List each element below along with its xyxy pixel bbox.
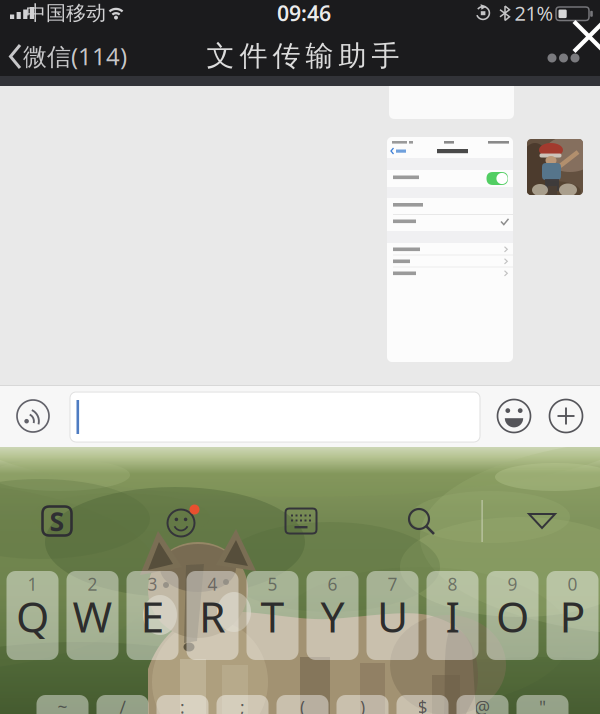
staticText: I xyxy=(445,588,459,644)
button[interactable]: Close xyxy=(570,17,600,55)
button[interactable]: 9 xyxy=(486,571,538,660)
button[interactable]: ) xyxy=(336,695,388,714)
staticText: T xyxy=(260,588,284,644)
staticText: R xyxy=(199,588,226,644)
button[interactable]: Keyboard switch xyxy=(284,504,317,537)
button[interactable]: More xyxy=(546,44,586,72)
button[interactable]: Stickers xyxy=(166,504,200,538)
staticText: 3 xyxy=(147,572,157,595)
button[interactable]: More options xyxy=(548,398,584,434)
staticText: 文件传输助手 xyxy=(206,39,399,73)
staticText: W xyxy=(72,588,112,644)
staticText: ) xyxy=(360,695,365,714)
button[interactable]: : xyxy=(156,695,208,714)
button[interactable]: 微信(114) xyxy=(4,42,136,72)
staticText: 9 xyxy=(507,572,517,595)
staticText: / xyxy=(119,695,125,714)
button[interactable]: Hide keyboard xyxy=(527,509,557,533)
staticText: : xyxy=(180,695,185,714)
staticText: E xyxy=(140,588,164,644)
staticText: " xyxy=(539,695,546,714)
button[interactable]: ( xyxy=(276,695,328,714)
staticText: 2 xyxy=(87,572,97,595)
staticText: 微信(114) xyxy=(23,40,127,72)
button[interactable]: @ xyxy=(456,695,508,714)
button[interactable]: Message field xyxy=(70,392,480,442)
staticText: 7 xyxy=(387,572,397,595)
button[interactable]: Search xyxy=(406,506,436,536)
button[interactable]: Sogou menu xyxy=(41,505,73,537)
staticText: Q xyxy=(16,588,49,644)
button[interactable]: 6 xyxy=(306,571,358,660)
button[interactable]: 7 xyxy=(366,571,418,660)
staticText: 21% xyxy=(514,0,553,26)
button[interactable]: Hold to talk xyxy=(15,398,51,434)
staticText: 中国移动 xyxy=(26,1,106,25)
staticText: ( xyxy=(300,695,305,714)
staticText: 5 xyxy=(267,572,277,595)
staticText: ~ xyxy=(57,695,67,714)
staticText: 09:46 xyxy=(277,0,331,27)
button[interactable]: ~ xyxy=(36,695,88,714)
staticText: 8 xyxy=(447,572,457,595)
staticText: 4 xyxy=(207,572,217,595)
button[interactable]: / xyxy=(96,695,148,714)
button[interactable]: Emoji xyxy=(496,398,532,434)
staticText: ; xyxy=(240,695,245,714)
button[interactable]: Contact avatar xyxy=(527,139,583,195)
button[interactable]: $ xyxy=(396,695,448,714)
button[interactable]: Screenshot message xyxy=(387,137,513,362)
button[interactable]: " xyxy=(516,695,568,714)
button[interactable]: 1 xyxy=(6,571,58,660)
button[interactable]: 2 xyxy=(66,571,118,660)
staticText: 6 xyxy=(327,572,337,595)
staticText: 0 xyxy=(567,572,577,595)
button[interactable]: 8 xyxy=(426,571,478,660)
button[interactable]: 5 xyxy=(246,571,298,660)
staticText: Y xyxy=(320,588,344,644)
button[interactable]: 3 xyxy=(126,571,178,660)
button[interactable]: ; xyxy=(216,695,268,714)
staticText: S xyxy=(49,503,64,539)
staticText: $ xyxy=(417,695,427,714)
staticText: @ xyxy=(474,695,490,714)
staticText: 1 xyxy=(27,572,37,595)
staticText: P xyxy=(559,588,585,644)
button[interactable]: 4 xyxy=(186,571,238,660)
staticText: U xyxy=(377,588,408,644)
button[interactable]: 0 xyxy=(546,571,598,660)
staticText: O xyxy=(496,588,529,644)
